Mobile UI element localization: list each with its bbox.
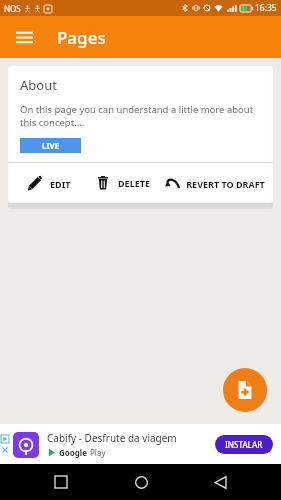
button[interactable]: REVERT TO DRAFT: [163, 176, 267, 191]
staticText: DELETE: [118, 177, 150, 189]
staticText: 16:35: [255, 2, 277, 14]
button[interactable]: Create new page: [223, 368, 267, 412]
staticText: Google: [59, 447, 88, 458]
button[interactable]: EDIT: [14, 176, 83, 191]
button[interactable]: LIVE: [20, 138, 81, 153]
staticText: INSTALAR: [225, 439, 263, 450]
button[interactable]: INSTALAR: [215, 435, 273, 454]
staticText: REVERT TO DRAFT: [186, 178, 265, 190]
button[interactable]: Cabify - Desfrute da viagem: [0, 424, 281, 464]
staticText: Play: [90, 447, 106, 458]
button[interactable]: DELETE: [83, 176, 163, 190]
button[interactable]: Open navigation menu: [8, 21, 40, 53]
button[interactable]: Home: [123, 464, 159, 500]
staticText: EDIT: [50, 178, 71, 190]
staticText: On this page you can understand a little…: [20, 103, 261, 129]
staticText: Pages: [57, 26, 106, 49]
staticText: Cabify - Desfrute da viagem: [47, 431, 177, 445]
staticText: About: [20, 76, 57, 94]
button[interactable]: Back: [202, 464, 238, 500]
button[interactable]: Recent apps: [43, 464, 79, 500]
staticText: NOS: [4, 3, 21, 14]
staticText: LIVE: [42, 140, 60, 151]
